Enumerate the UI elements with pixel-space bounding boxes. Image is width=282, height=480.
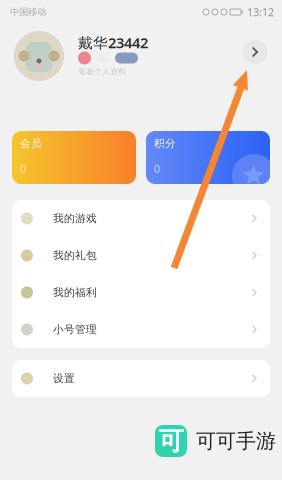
staticText: 可 [158, 425, 183, 456]
staticText: 13:12 [247, 5, 274, 19]
staticText: 可可手游 [196, 429, 276, 453]
staticText: 积分 [154, 137, 176, 150]
staticText: 0 [154, 161, 160, 176]
button[interactable]: 我的礼包 [12, 237, 270, 274]
staticText: 查看个人资料 [78, 67, 126, 76]
staticText: 中国移动 [10, 6, 46, 18]
button[interactable]: 小号管理 [12, 311, 270, 348]
staticText: 我的福利 [53, 286, 97, 299]
button[interactable]: 我的游戏 [12, 200, 270, 237]
staticText: 0 [20, 161, 26, 176]
button[interactable]: 我的福利 [12, 274, 270, 311]
button[interactable]: 会员 [12, 131, 136, 184]
staticText: 小号管理 [53, 323, 97, 336]
staticText: 戴华23442 [78, 33, 148, 52]
button[interactable]: 设置 [12, 360, 270, 397]
staticText: 我的礼包 [53, 249, 97, 262]
staticText: 会员 [20, 137, 42, 150]
staticText: 我的游戏 [53, 212, 97, 225]
button[interactable]: 积分 [146, 131, 270, 184]
staticText: 设置 [53, 372, 75, 385]
button[interactable]: 个人中心 [236, 39, 270, 73]
